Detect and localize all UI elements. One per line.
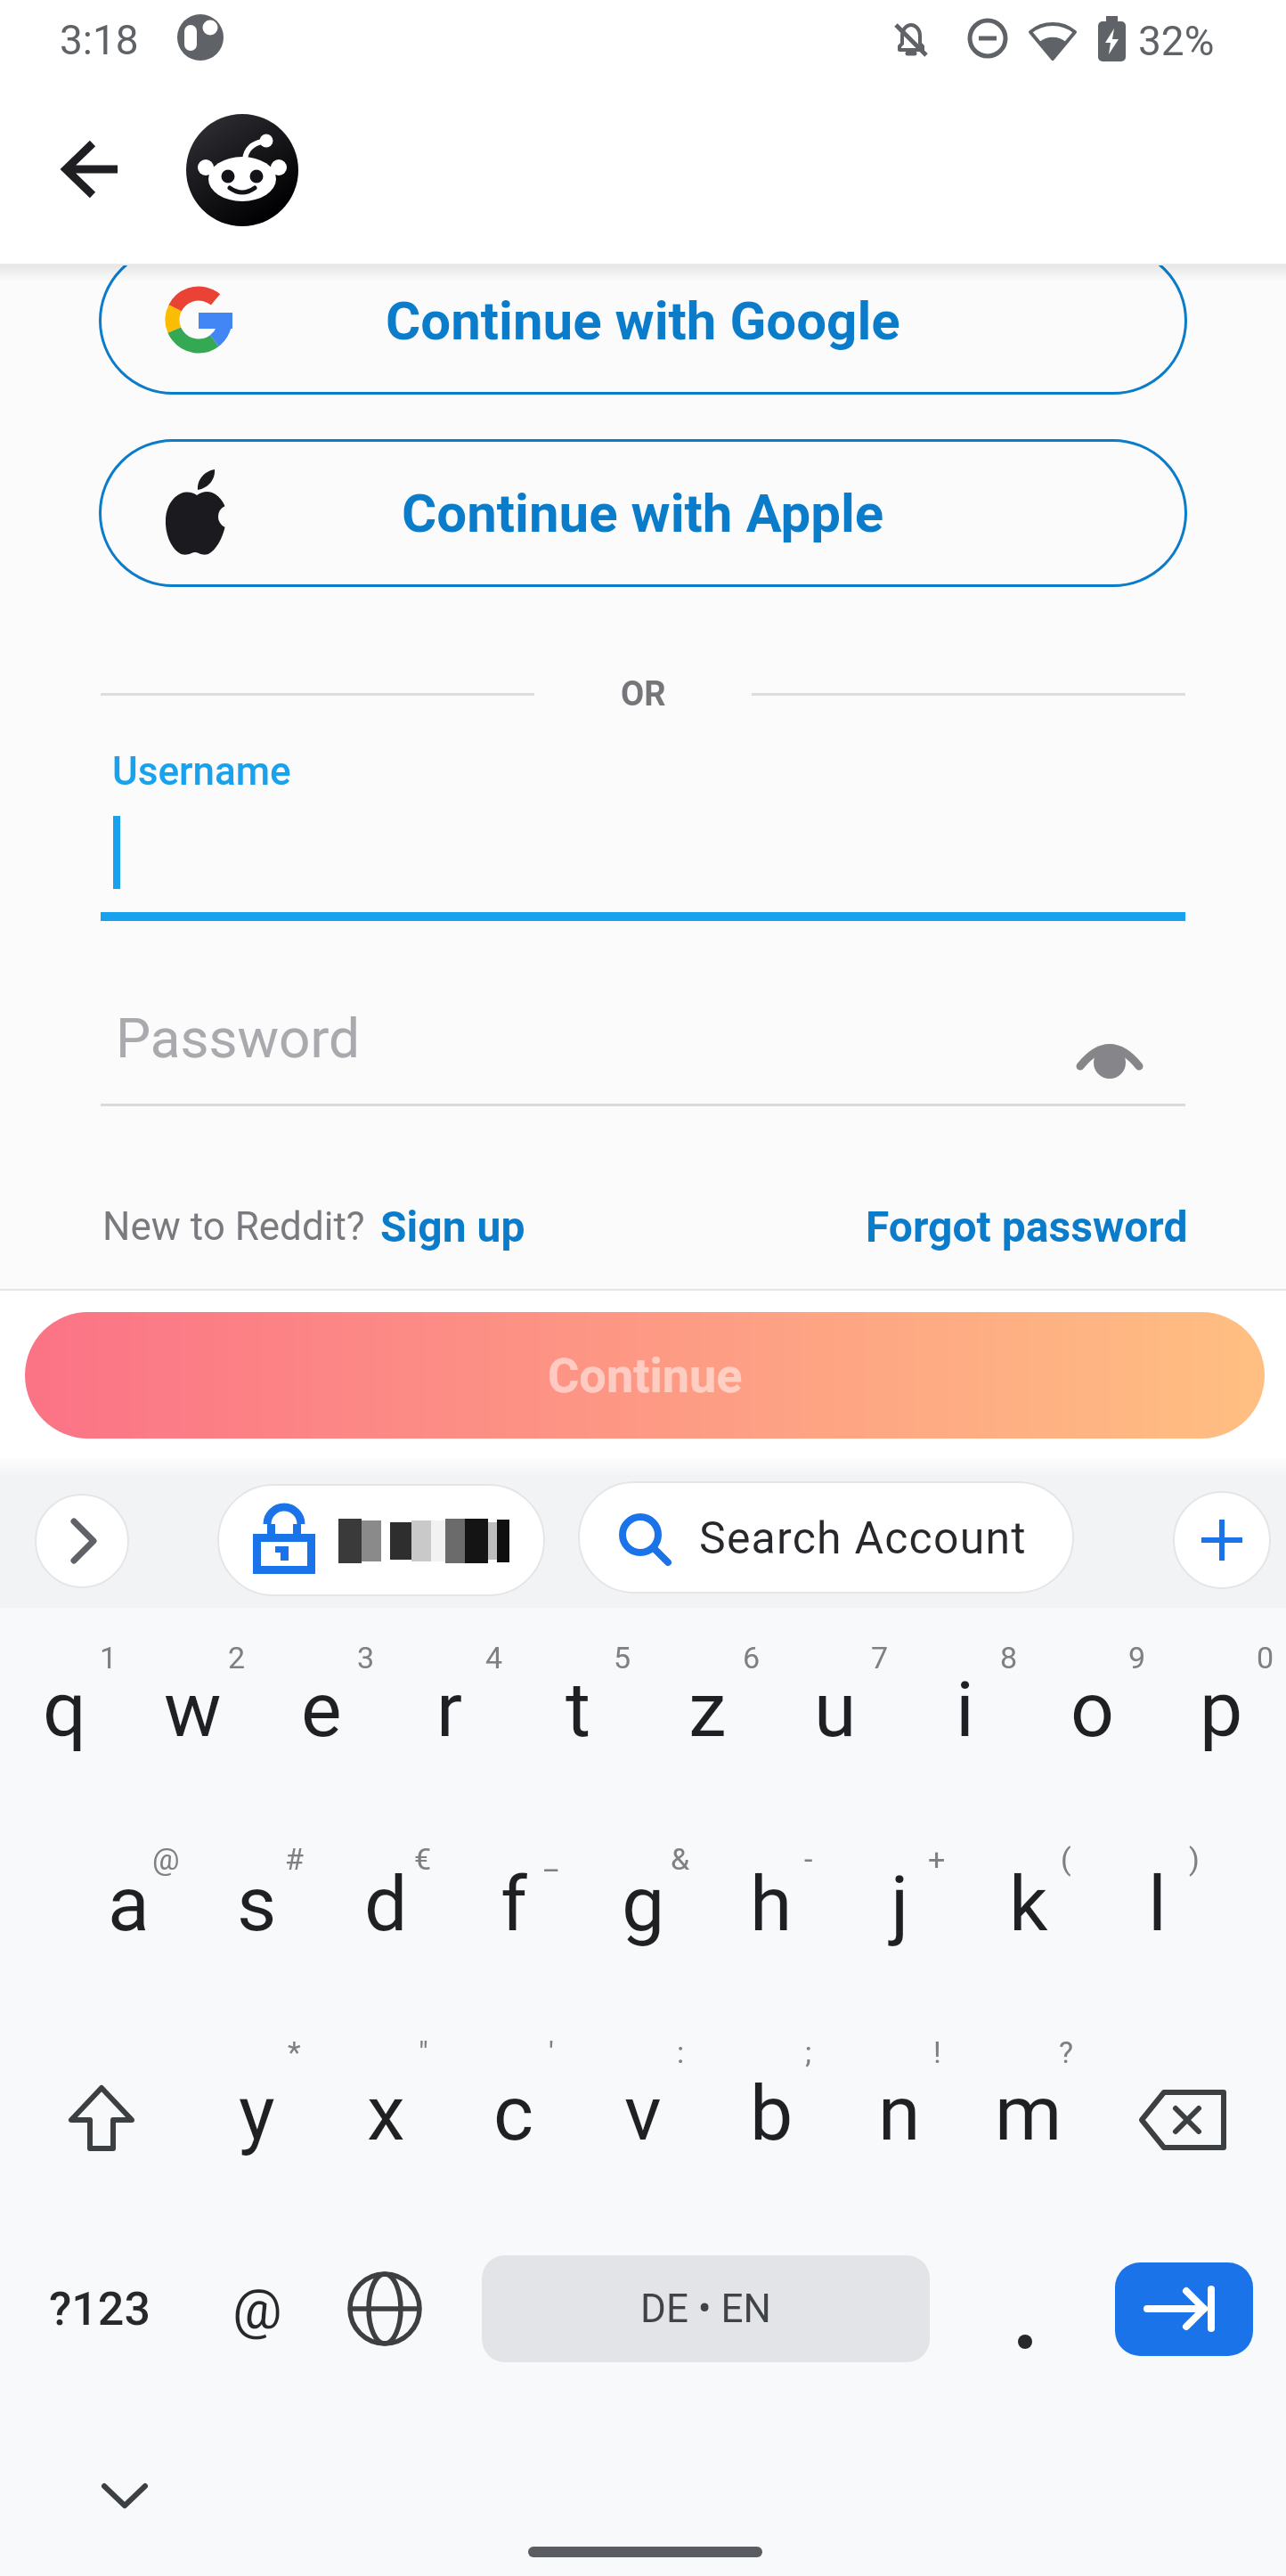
button[interactable]: t <box>516 1616 640 1803</box>
staticText: Forgot password <box>866 1202 1188 1251</box>
staticText: Continue with Apple <box>402 482 884 544</box>
button[interactable] <box>101 980 1062 1106</box>
staticText: f <box>501 1859 527 1949</box>
staticText: Continue <box>548 1348 743 1404</box>
button[interactable]: l <box>1095 1810 1219 1997</box>
staticText: n <box>878 2068 921 2158</box>
button[interactable]: b <box>709 2019 834 2206</box>
button[interactable]: o <box>1030 1616 1155 1803</box>
button[interactable] <box>1173 1491 1271 1589</box>
staticText: Password <box>116 1006 360 1071</box>
button[interactable]: v <box>581 2019 705 2206</box>
button[interactable] <box>101 748 1185 921</box>
staticText: DE • EN <box>640 2286 771 2332</box>
button[interactable] <box>217 1484 545 1596</box>
button[interactable]: i <box>902 1616 1027 1803</box>
button[interactable]: g <box>581 1810 705 1997</box>
staticText: # <box>285 1841 304 1877</box>
staticText: ! <box>933 2034 941 2070</box>
staticText: @ <box>232 2277 282 2342</box>
staticText: _ <box>544 1841 558 1877</box>
staticText: v <box>624 2068 662 2158</box>
staticText: ( <box>1061 1841 1071 1877</box>
staticText: 6 <box>743 1640 761 1675</box>
button[interactable]: c <box>452 2019 576 2206</box>
staticText: s <box>237 1859 277 1949</box>
button[interactable]: a <box>66 1810 191 1997</box>
button[interactable]: r <box>387 1616 512 1803</box>
staticText: : <box>677 2034 685 2070</box>
button[interactable] <box>1065 1015 1154 1105</box>
button[interactable]: h <box>709 1810 834 1997</box>
staticText: 0 <box>1257 1640 1274 1675</box>
button[interactable]: p <box>1159 1616 1283 1803</box>
staticText: 1 <box>100 1640 118 1675</box>
staticText: Username <box>112 748 291 795</box>
button[interactable] <box>35 1494 129 1588</box>
staticText: j <box>891 1859 909 1949</box>
button[interactable] <box>321 2245 445 2374</box>
staticText: New to Reddit? <box>102 1203 365 1250</box>
button[interactable]: f <box>452 1810 576 1997</box>
staticText: r <box>436 1665 463 1755</box>
button[interactable] <box>36 2245 169 2374</box>
button[interactable] <box>1115 2262 1253 2356</box>
staticText: " <box>419 2034 428 2070</box>
button[interactable]: s <box>194 1810 319 1997</box>
button[interactable] <box>1116 2053 1249 2187</box>
staticText: 9 <box>1128 1640 1146 1675</box>
staticText: ?123 <box>49 2282 151 2336</box>
staticText: y <box>239 2068 275 2158</box>
button[interactable]: k <box>966 1810 1091 1997</box>
staticText: € <box>414 1841 432 1877</box>
staticText: ' <box>549 2034 554 2070</box>
staticText: x <box>367 2068 405 2158</box>
staticText: + <box>928 1841 946 1877</box>
staticText: @ <box>152 1841 180 1877</box>
button[interactable]: Sign up <box>380 1164 647 1289</box>
staticText: 3:18 <box>60 16 139 64</box>
button[interactable] <box>196 2245 321 2374</box>
staticText: ; <box>805 2034 812 2070</box>
button[interactable] <box>578 1481 1074 1594</box>
staticText: b <box>750 2068 794 2158</box>
button[interactable]: Continue <box>25 1312 1265 1439</box>
button[interactable]: x <box>323 2019 448 2206</box>
button[interactable]: e <box>259 1616 384 1803</box>
staticText: m <box>995 2068 1062 2158</box>
staticText: 4 <box>485 1640 503 1675</box>
button[interactable] <box>84 2455 166 2537</box>
button[interactable] <box>36 2053 169 2187</box>
button[interactable]: w <box>130 1616 255 1803</box>
button[interactable]: Continue with Google <box>99 247 1187 395</box>
staticText: u <box>814 1665 857 1755</box>
button[interactable]: u <box>773 1616 898 1803</box>
button[interactable]: m <box>966 2019 1091 2206</box>
staticText: 7 <box>871 1640 889 1675</box>
button[interactable]: Forgot password <box>743 1164 1188 1289</box>
staticText: q <box>43 1665 86 1755</box>
staticText: & <box>671 1841 690 1877</box>
staticText: l <box>1148 1859 1167 1949</box>
button[interactable]: Continue with Apple <box>99 439 1187 587</box>
staticText: 2 <box>228 1640 246 1675</box>
staticText: k <box>1009 1859 1048 1949</box>
button[interactable] <box>52 129 134 211</box>
staticText: OR <box>621 674 666 714</box>
staticText: a <box>108 1859 150 1949</box>
button[interactable]: z <box>645 1616 769 1803</box>
button[interactable]: q <box>2 1616 126 1803</box>
button[interactable] <box>971 2245 1078 2374</box>
staticText: d <box>364 1859 408 1949</box>
button[interactable]: n <box>837 2019 962 2206</box>
button[interactable]: y <box>194 2019 319 2206</box>
staticText: z <box>688 1665 727 1755</box>
button[interactable] <box>482 2255 930 2362</box>
staticText: Sign up <box>380 1202 525 1251</box>
button[interactable]: j <box>837 1810 962 1997</box>
staticText: Continue with Google <box>386 289 900 352</box>
staticText: i <box>956 1665 974 1755</box>
staticText: 32% <box>1138 17 1215 65</box>
staticText: w <box>164 1665 222 1755</box>
button[interactable]: d <box>323 1810 448 1997</box>
